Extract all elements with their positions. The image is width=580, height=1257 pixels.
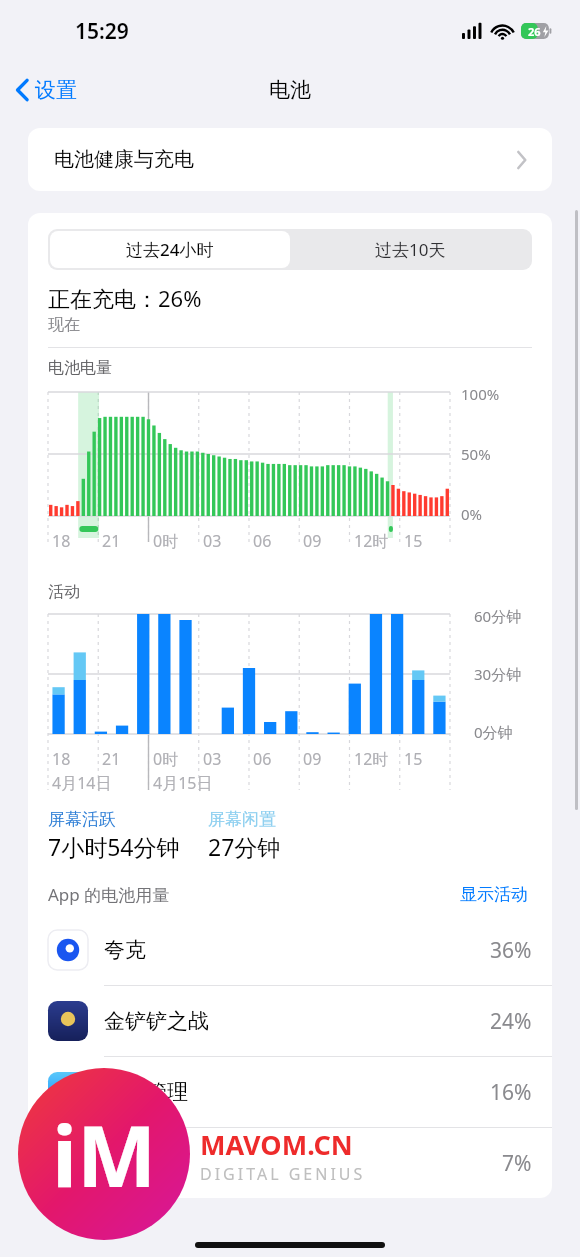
staticText: 06 bbox=[253, 530, 272, 552]
staticText: 15:29 bbox=[75, 17, 129, 46]
staticText: 电池 bbox=[269, 77, 311, 103]
staticText: 24% bbox=[490, 1007, 532, 1036]
staticText: 50% bbox=[461, 444, 491, 464]
staticText: 12时 bbox=[354, 530, 389, 552]
other: 打开电池健康与充电 bbox=[517, 152, 526, 168]
staticText: 0% bbox=[461, 504, 483, 524]
staticText: 电池健康与充电 bbox=[54, 147, 194, 172]
staticText: 4月15日 bbox=[153, 772, 213, 794]
staticText: 现在 bbox=[48, 315, 80, 335]
staticText: 03 bbox=[203, 748, 222, 770]
staticText: 60分钟 bbox=[474, 606, 522, 626]
staticText: 18 bbox=[52, 530, 71, 552]
staticText: 36% bbox=[490, 936, 532, 965]
staticText: 电池电量 bbox=[48, 358, 112, 378]
button[interactable]: 过去24小时 bbox=[50, 231, 290, 268]
staticText: 15 bbox=[404, 748, 423, 770]
staticText: 屏幕活跃 bbox=[48, 809, 116, 830]
staticText: 后台活动 bbox=[104, 1167, 164, 1186]
staticText: 微信 bbox=[104, 1141, 146, 1167]
staticText: 7% bbox=[502, 1149, 532, 1178]
staticText: 屏幕闲置 bbox=[208, 809, 276, 830]
staticText: DIGITAL GENIUS bbox=[200, 1163, 366, 1185]
staticText: 7小时54分钟 bbox=[48, 831, 180, 862]
staticText: 09 bbox=[303, 748, 322, 770]
staticText: 0时 bbox=[153, 530, 179, 552]
staticText: 18 bbox=[52, 748, 71, 770]
staticText: 21 bbox=[102, 530, 121, 552]
staticText: 03 bbox=[203, 530, 222, 552]
staticText: 06 bbox=[253, 748, 272, 770]
staticText: 夸克 bbox=[104, 937, 146, 963]
staticText: 文件管理 bbox=[104, 1079, 188, 1105]
button[interactable]: 显示活动 bbox=[456, 880, 532, 909]
staticText: 设置 bbox=[35, 77, 77, 103]
button[interactable]: 过去10天 bbox=[290, 231, 530, 268]
staticText: 金铲铲之战 bbox=[104, 1008, 209, 1034]
staticText: 4月14日 bbox=[52, 772, 112, 794]
staticText: 正在充电：26% bbox=[48, 283, 202, 313]
staticText: 过去24小时 bbox=[126, 238, 214, 261]
staticText: 27分钟 bbox=[208, 831, 281, 862]
button[interactable]: 微信 bbox=[28, 1128, 552, 1198]
staticText: 12时 bbox=[354, 748, 389, 770]
button[interactable]: 文件管理 bbox=[28, 1057, 552, 1127]
staticText: 26 bbox=[528, 24, 541, 39]
staticText: 16% bbox=[490, 1078, 532, 1107]
staticText: 0时 bbox=[153, 748, 179, 770]
staticText: 100% bbox=[461, 384, 500, 404]
button[interactable]: 夸克 bbox=[28, 915, 552, 985]
staticText: iM bbox=[52, 1097, 157, 1211]
staticText: 09 bbox=[303, 530, 322, 552]
staticText: 0分钟 bbox=[474, 722, 513, 742]
staticText: MAVOM.CN bbox=[200, 1126, 353, 1163]
staticText: 21 bbox=[102, 748, 121, 770]
staticText: 过去10天 bbox=[375, 238, 446, 261]
button[interactable]: 设置 bbox=[0, 71, 85, 109]
button[interactable]: 金铲铲之战 bbox=[28, 986, 552, 1056]
staticText: 活动 bbox=[48, 582, 80, 602]
staticText: 30分钟 bbox=[474, 664, 522, 684]
staticText: 15 bbox=[404, 530, 423, 552]
staticText: App 的电池用量 bbox=[48, 883, 170, 906]
button[interactable]: 电池健康与充电 bbox=[28, 128, 552, 191]
staticText: 显示活动 bbox=[460, 884, 528, 905]
